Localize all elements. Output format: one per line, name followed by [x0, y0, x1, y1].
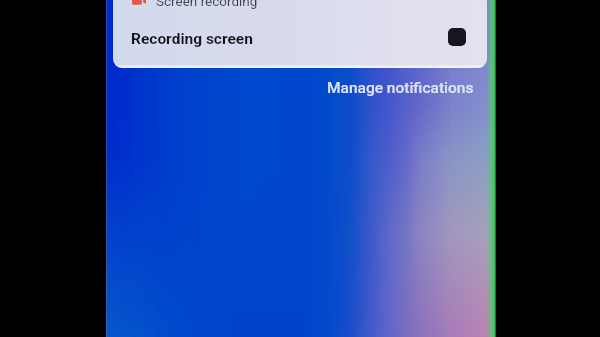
button[interactable]: Stop recording [448, 28, 466, 46]
button[interactable]: Screen recording [113, 0, 487, 68]
staticText: Recording screen [131, 30, 253, 48]
staticText: Manage notifications [327, 79, 474, 97]
staticText: Screen recording [156, 0, 258, 9]
button[interactable]: Manage notifications [327, 79, 474, 97]
